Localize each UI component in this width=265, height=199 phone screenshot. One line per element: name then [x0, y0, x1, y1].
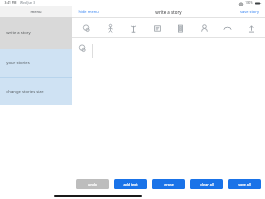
staticText: save all	[238, 182, 251, 187]
button[interactable]: save story	[239, 8, 260, 15]
staticText: 100%	[245, 1, 253, 5]
staticText: add text	[123, 182, 138, 187]
button[interactable]: Tree	[125, 20, 141, 36]
staticText: save story	[240, 9, 259, 14]
button[interactable]: undo	[76, 179, 109, 189]
staticText: undo	[88, 182, 97, 187]
staticText: Wed Jun 3	[20, 1, 35, 5]
staticText: change stories size	[6, 89, 44, 95]
button[interactable]: hide menu	[77, 8, 100, 15]
button[interactable]: write a story	[0, 17, 72, 49]
button[interactable]: Character	[102, 20, 118, 36]
button[interactable]: your stories	[0, 49, 72, 77]
button[interactable]: erase	[152, 179, 185, 189]
staticText: clear all	[200, 182, 214, 187]
button[interactable]: Cloud	[219, 20, 235, 36]
staticText: erase	[164, 182, 174, 187]
staticText: your stories	[6, 60, 30, 66]
button[interactable]: Person	[196, 20, 212, 36]
staticText: hide menu	[78, 9, 99, 14]
button[interactable]: clear all	[190, 179, 223, 189]
button[interactable]: change stories size	[0, 78, 72, 105]
button[interactable]: Building	[172, 20, 188, 36]
button[interactable]: Text	[149, 20, 165, 36]
button[interactable]: Stamp	[78, 20, 94, 36]
staticText: write a story	[155, 9, 182, 15]
button[interactable]: add text	[114, 179, 147, 189]
button[interactable]: save all	[228, 179, 261, 189]
staticText: menu	[30, 9, 42, 14]
staticText: write a story	[6, 30, 31, 36]
staticText: 3:41 PM	[4, 1, 17, 5]
button[interactable]: Upload	[243, 20, 259, 36]
